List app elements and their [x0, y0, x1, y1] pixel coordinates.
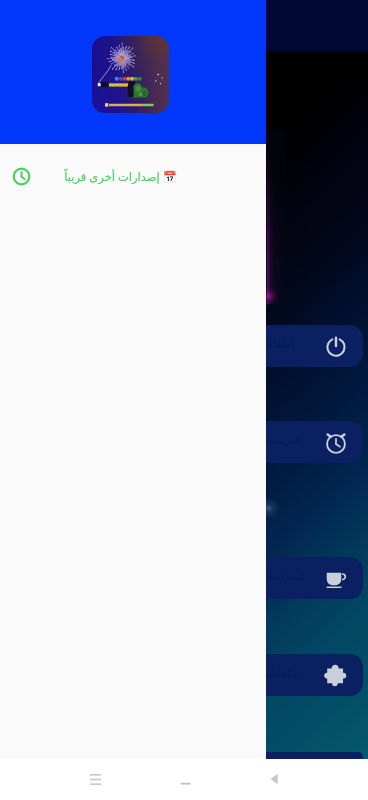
button[interactable]: Back [257, 761, 293, 797]
staticText: استراحة [268, 570, 306, 583]
staticText: إصدارات أخرى قريباً 📅 [64, 169, 177, 185]
button[interactable]: إضافات [255, 654, 363, 696]
staticText: إطفاء [268, 338, 294, 351]
button[interactable]: Home [167, 761, 203, 797]
button[interactable]: الترتيب [255, 421, 363, 463]
button[interactable]: إطفاء [255, 325, 363, 367]
staticText: الترتيب [268, 434, 301, 447]
button[interactable]: إصدارات أخرى قريباً 📅 [0, 144, 266, 209]
button[interactable]: استراحة [255, 557, 363, 599]
button[interactable]: Menu item [255, 752, 363, 761]
button[interactable]: Recents [77, 761, 113, 797]
staticText: إضافات [268, 667, 303, 680]
